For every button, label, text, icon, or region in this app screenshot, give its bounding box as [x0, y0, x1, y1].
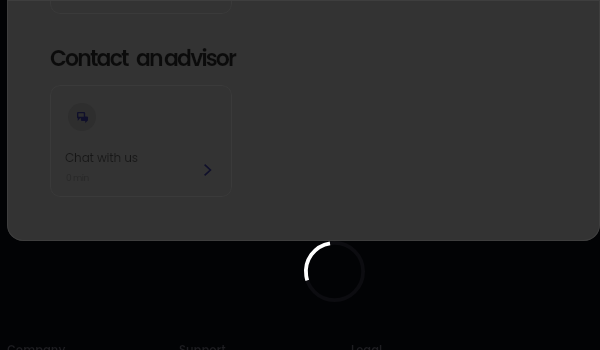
staticText: an — [136, 43, 162, 74]
button[interactable] — [50, 0, 232, 14]
button[interactable]: Company — [7, 342, 66, 350]
staticText: Contact — [50, 43, 128, 74]
staticText: 0 — [66, 172, 72, 185]
staticText: advisor — [164, 43, 236, 74]
button[interactable]: Support — [179, 342, 226, 350]
button[interactable]: Legal — [351, 342, 383, 350]
other: Loading — [304, 241, 365, 302]
staticText: Chat with us — [65, 149, 138, 166]
button[interactable]: Chat with us — [50, 85, 232, 197]
